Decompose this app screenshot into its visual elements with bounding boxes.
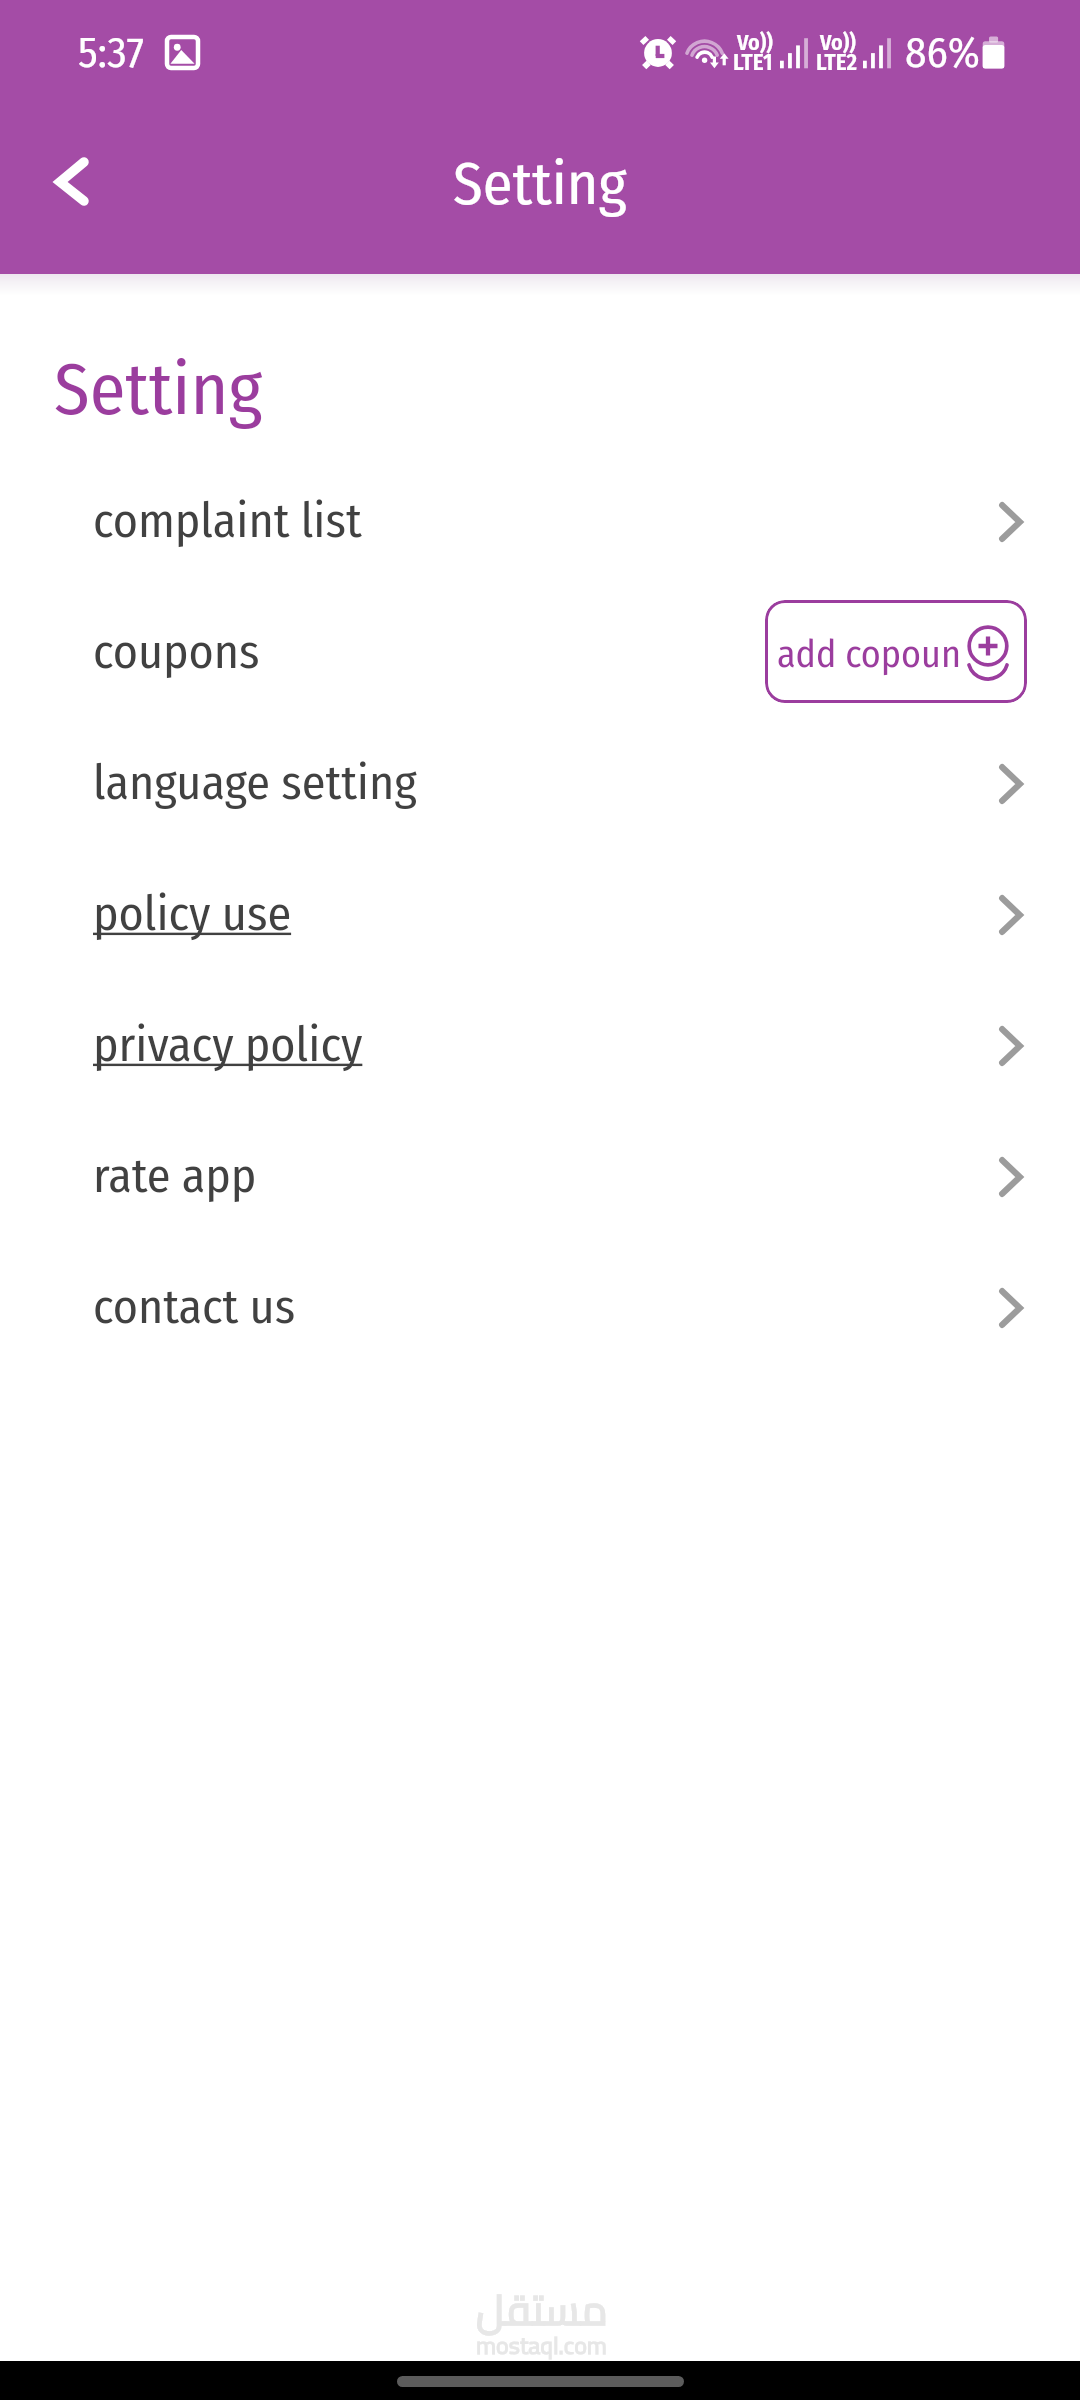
- staticText: 86%: [905, 27, 980, 79]
- staticText: مستقل: [476, 2270, 608, 2349]
- staticText: Setting: [54, 347, 263, 433]
- staticText: Vo)): [737, 29, 773, 55]
- button[interactable]: policy use: [0, 848, 1080, 979]
- staticText: privacy policy: [93, 1016, 363, 1074]
- button[interactable]: complaint list: [0, 455, 1080, 586]
- button[interactable]: rate app: [0, 1110, 1080, 1241]
- staticText: contact us: [93, 1278, 296, 1336]
- staticText: Vo)): [820, 29, 856, 55]
- button[interactable]: language setting: [0, 717, 1080, 848]
- staticText: Setting: [453, 148, 627, 220]
- staticText: language setting: [93, 754, 417, 812]
- staticText: mostaql.com: [476, 2323, 607, 2368]
- staticText: 5:37: [78, 27, 144, 79]
- button[interactable]: privacy policy: [0, 979, 1080, 1110]
- staticText: policy use: [93, 885, 292, 943]
- staticText: complaint list: [93, 492, 362, 550]
- staticText: LTE1: [733, 48, 773, 76]
- button[interactable]: add copoun: [765, 600, 1027, 703]
- button[interactable]: contact us: [0, 1241, 1080, 1372]
- staticText: add copoun: [777, 631, 961, 677]
- button[interactable]: Back: [16, 126, 128, 238]
- staticText: LTE2: [816, 48, 858, 76]
- staticText: coupons: [93, 623, 260, 681]
- staticText: rate app: [93, 1147, 257, 1205]
